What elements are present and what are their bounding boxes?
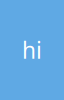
staticText: hi bbox=[22, 35, 42, 65]
